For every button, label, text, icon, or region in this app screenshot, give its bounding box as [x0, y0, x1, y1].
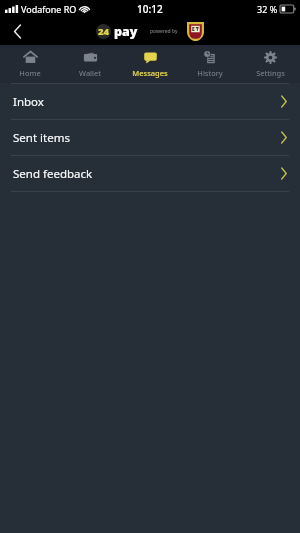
staticText: History	[197, 68, 223, 78]
staticText: 32 %	[257, 3, 278, 15]
staticText: Send feedback	[13, 166, 281, 182]
staticText: pay	[114, 23, 138, 40]
button[interactable]: Send feedback	[0, 156, 300, 191]
staticText: Wallet	[79, 68, 101, 78]
button[interactable]: Inbox	[0, 84, 300, 119]
button[interactable]: Sent items	[0, 120, 300, 155]
staticText: 10:12	[137, 2, 163, 16]
button[interactable]: Back	[0, 18, 34, 45]
button[interactable]: Settings	[240, 45, 300, 83]
staticText: powered by	[150, 28, 178, 35]
staticText: Messages	[132, 68, 168, 78]
staticText: Vodafone RO	[21, 3, 77, 15]
button[interactable]: History	[180, 45, 240, 83]
button[interactable]: Wallet	[60, 45, 120, 83]
button[interactable]: Home	[0, 45, 60, 83]
staticText: Sent items	[13, 130, 281, 146]
staticText: Inbox	[13, 94, 281, 110]
staticText: 24	[98, 25, 110, 38]
staticText: Home	[19, 68, 41, 78]
button[interactable]: Messages	[120, 45, 180, 83]
staticText: Settings	[256, 68, 285, 78]
